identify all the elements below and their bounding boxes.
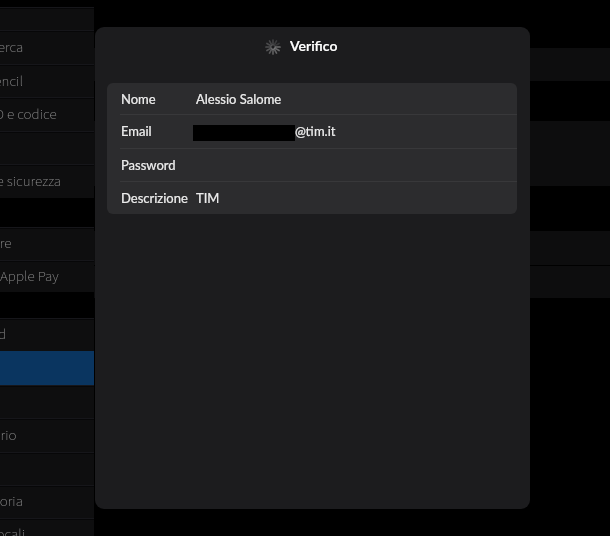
staticText: Descrizione — [121, 190, 188, 206]
staticText: Face ID e codice — [0, 104, 57, 125]
staticText: Verifico — [290, 37, 338, 54]
button[interactable]: App Store — [0, 227, 94, 260]
button[interactable]: Apple Pencil — [0, 64, 94, 98]
staticText: Apple Pencil — [0, 71, 23, 92]
button[interactable]: iCloud — [0, 318, 94, 351]
button[interactable]: Calendario — [0, 418, 94, 452]
button[interactable]: Privacy e sicurezza — [0, 164, 94, 198]
button[interactable]: Face ID e codice — [0, 97, 94, 131]
staticText: App Store — [0, 233, 12, 254]
staticText: Email — [121, 123, 152, 139]
button[interactable]: Ricerca — [0, 30, 94, 64]
staticText: Memoria — [0, 491, 23, 512]
staticText: Password — [121, 157, 176, 173]
staticText: Alessio Salome — [196, 91, 282, 107]
button[interactable]: Password — [107, 148, 517, 182]
other: Verifica in corso — [266, 40, 280, 54]
button[interactable]: Descrizione — [107, 181, 517, 214]
staticText: @tim.it — [295, 123, 336, 139]
button[interactable]: Nome — [107, 83, 517, 114]
staticText: iCloud — [0, 324, 7, 345]
staticText: Ricerca — [0, 37, 24, 58]
staticText: Nome — [121, 91, 156, 107]
staticText: Wallet e Apple Pay — [0, 266, 59, 287]
button[interactable]: File locali — [0, 518, 94, 536]
staticText: File locali — [0, 524, 26, 536]
staticText: Calendario — [0, 425, 17, 446]
button[interactable]: Email — [107, 114, 517, 148]
staticText: Privacy e sicurezza — [0, 171, 62, 192]
button[interactable]: Memoria — [0, 485, 94, 518]
button[interactable]: Wallet e Apple Pay — [0, 260, 94, 292]
staticText: TIM — [196, 190, 220, 206]
